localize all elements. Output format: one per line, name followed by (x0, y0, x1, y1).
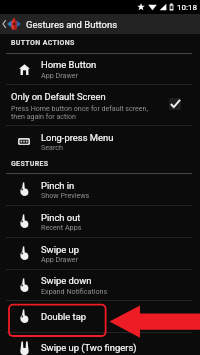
staticText: Swipe down (41, 275, 92, 286)
staticText: Recent Apps (41, 223, 82, 231)
staticText: Swipe up (Two fingers) (41, 342, 137, 353)
button[interactable]: Pinch out (0, 205, 200, 237)
button[interactable]: Swipe down (0, 269, 200, 300)
staticText: Home Button (41, 59, 97, 70)
staticText: Expand Notifications (41, 287, 108, 295)
staticText: Pinch in (41, 180, 75, 191)
staticText: 10:18 (177, 3, 197, 12)
button[interactable]: Home Button (0, 53, 200, 84)
button[interactable]: Only on Default Screen (0, 84, 200, 125)
staticText: Only on Default Screen (11, 91, 106, 102)
button[interactable]: Swipe up (0, 237, 200, 269)
staticText: Show Previews (41, 191, 90, 199)
staticText: GESTURES (11, 160, 49, 168)
button[interactable]: Long-press Menu (0, 125, 200, 157)
staticText: then again for action (11, 112, 77, 120)
button[interactable]: Double tap (0, 300, 200, 332)
staticText: BUTTON ACTIONS (11, 39, 75, 47)
staticText: App Drawer (41, 255, 79, 263)
staticText: Swipe up (41, 244, 79, 255)
staticText: Gestures and Buttons (26, 19, 118, 30)
staticText: Pinch out (41, 212, 81, 223)
button[interactable]: Pinch in (0, 173, 200, 205)
button[interactable]: Navigate up (0, 14, 200, 34)
staticText: Long-press Menu (41, 132, 114, 143)
staticText: App Drawer (41, 71, 79, 79)
staticText: Search (41, 143, 64, 151)
button[interactable]: Swipe up (Two fingers) (0, 332, 200, 355)
staticText: Double tap (41, 311, 87, 322)
staticText: Press Home button once for default scree… (11, 104, 148, 112)
